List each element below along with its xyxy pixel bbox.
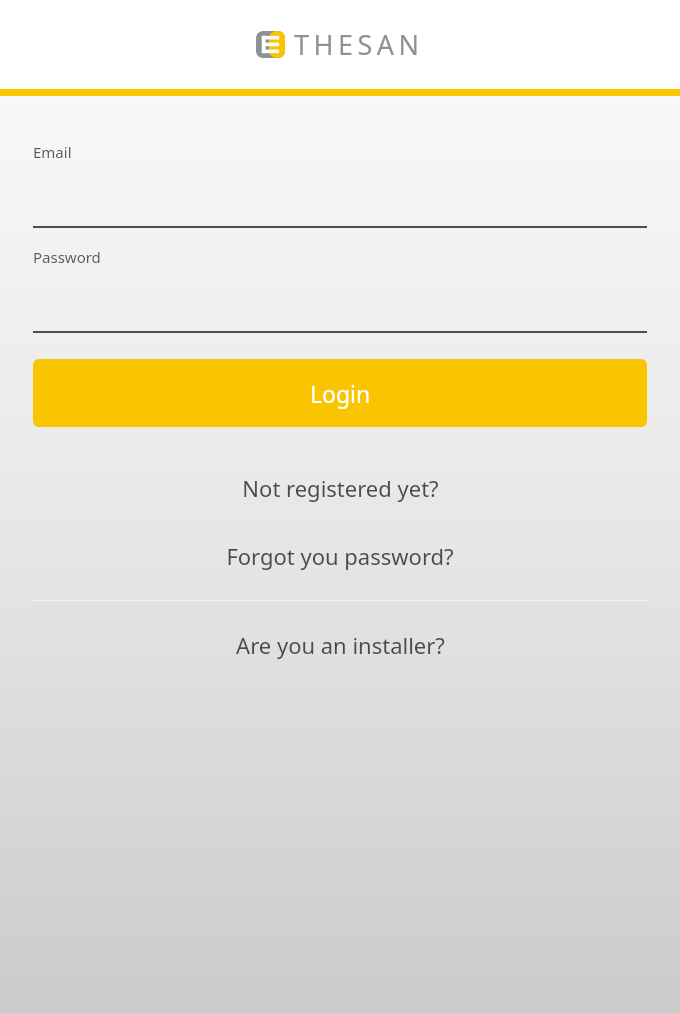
staticText: Login [310, 378, 371, 409]
staticText: Not registered yet? [242, 473, 439, 503]
staticText: THESAN [294, 26, 424, 63]
button[interactable]: Login [33, 359, 647, 427]
button[interactable]: Not registered yet? [33, 473, 647, 503]
button[interactable]: Are you an installer? [33, 630, 647, 660]
staticText: Forgot you password? [226, 541, 454, 571]
staticText: Email [33, 142, 72, 162]
button[interactable]: Forgot you password? [33, 541, 647, 571]
staticText: Password [33, 247, 101, 267]
staticText: Are you an installer? [236, 630, 445, 660]
